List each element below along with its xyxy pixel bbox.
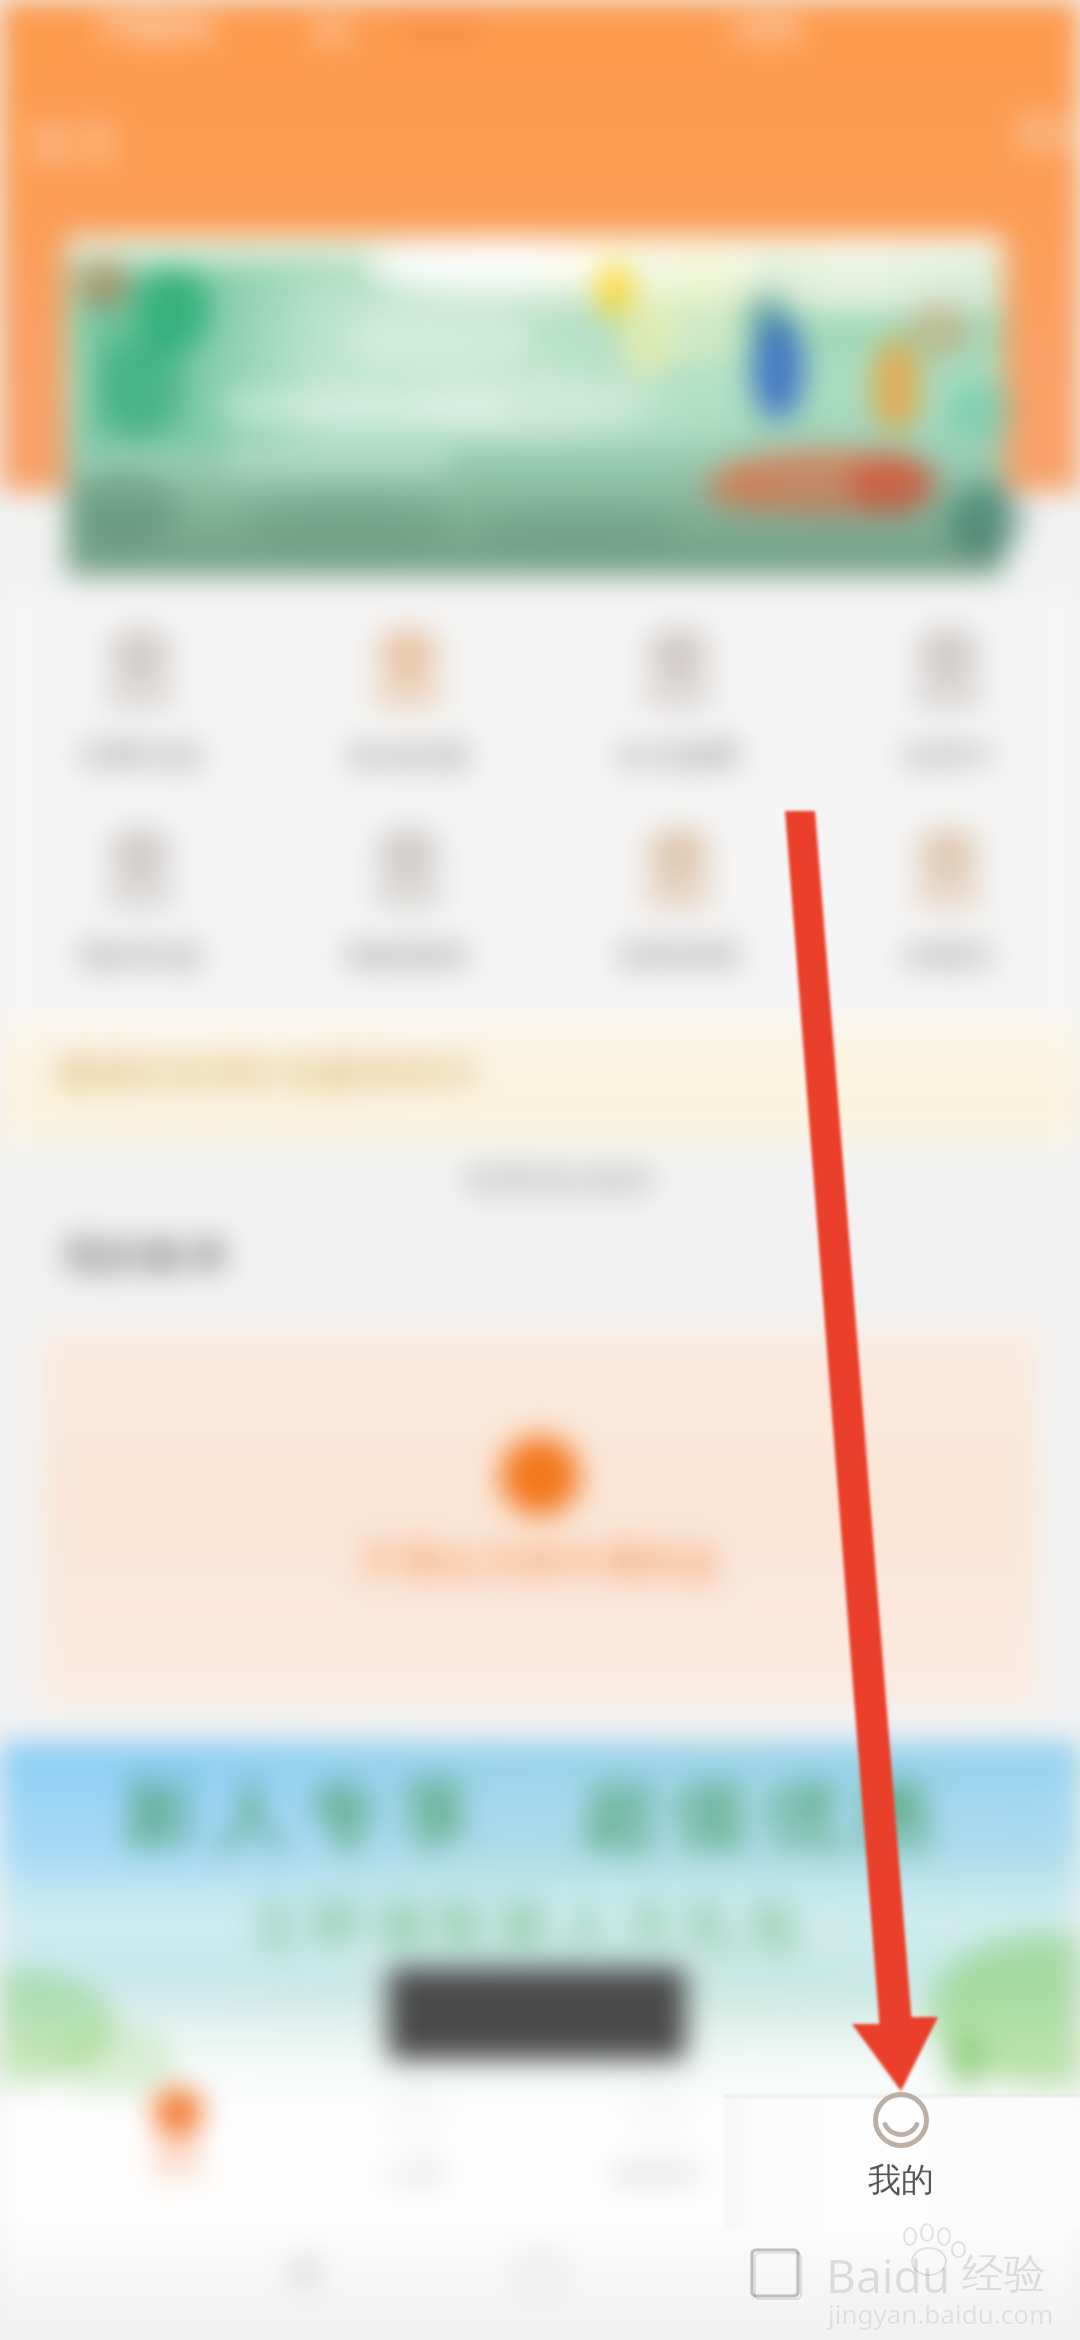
staticText: 开通会员领专属权益 [360,1536,720,1586]
staticText: 我的 [868,2159,934,2201]
button[interactable]: 我的 [781,2096,1021,2230]
staticText: 我的快递 [78,936,202,975]
button[interactable]: Back [240,2232,360,2332]
staticText: 立即领取新人大礼包 [246,1894,804,1960]
button[interactable]: Recent apps [720,2232,840,2332]
staticText: 新人专享 [114,1768,482,1864]
staticText: 中国移动 [96,10,216,48]
staticText: 查看更多服务 [464,1160,656,1200]
staticText: 余额宝 [902,936,995,975]
staticText: 话费充值 [78,736,202,775]
staticText: 超值优惠 [574,1768,942,1864]
button[interactable]: Home tab [60,2096,275,2230]
staticText: 蚂蚁森林 [346,936,470,975]
staticText: 邀请好友得红包最高88元 [56,1044,480,1096]
staticText: 加油优惠 [346,736,470,775]
staticText: 18:24 [400,10,477,51]
staticText: 搜索 [1012,104,1080,164]
button[interactable]: Cart tab [545,2096,760,2230]
staticText: 生活缴费 [616,736,740,775]
staticText: 100% [726,10,803,51]
staticText: 我的账单 [62,1230,230,1283]
staticText: 信用卡 [902,736,995,775]
staticText: 首页 [146,2150,210,2190]
staticText: 4G [312,10,351,51]
staticText: 花呗借呗 [616,936,740,975]
staticText: 首页 [26,114,122,174]
staticText: Baidu [826,2244,951,2307]
staticText: jingyan.baidu.com [828,2296,1054,2331]
staticText: 经验 [962,2248,1046,2301]
